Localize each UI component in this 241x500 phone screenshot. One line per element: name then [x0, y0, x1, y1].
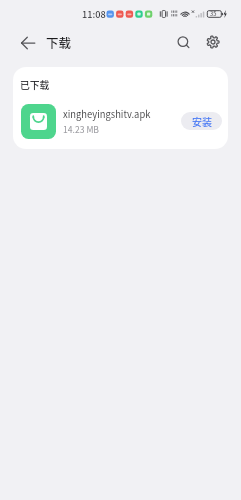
staticText: 已下载 [20, 78, 50, 92]
button[interactable]: Settings [199, 28, 227, 56]
staticText: 安装 [192, 114, 212, 128]
staticText: 14.23 MB [63, 123, 100, 135]
staticText: 35 [210, 10, 217, 18]
button[interactable]: 安装 [181, 112, 222, 130]
button[interactable]: xingheyingshitv.apk [13, 99, 228, 143]
button[interactable]: Back [14, 29, 42, 57]
button[interactable]: Search [170, 29, 198, 57]
staticText: xingheyingshitv.apk [63, 107, 151, 121]
staticText: 下载 [46, 33, 72, 51]
staticText: 11:08 [82, 7, 106, 20]
